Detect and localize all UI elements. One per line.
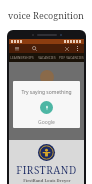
button[interactable]: More options bbox=[73, 44, 82, 53]
button[interactable]: Menu bbox=[12, 44, 22, 53]
button[interactable]: PDF VACANCIES bbox=[59, 53, 84, 62]
staticText: voice Recognition bbox=[8, 9, 84, 21]
staticText: Google bbox=[38, 119, 55, 126]
button[interactable]: Microphone bbox=[40, 101, 53, 114]
button[interactable]: LEARNERSHIPS bbox=[9, 53, 34, 62]
staticText: FirstRand Louis Dreyer bbox=[23, 178, 71, 183]
button[interactable]: Search bbox=[29, 44, 39, 53]
staticText: FIRSTRAND bbox=[16, 163, 77, 177]
staticText: PDF VACANCIES bbox=[59, 56, 84, 60]
button[interactable]: Close bbox=[62, 44, 71, 53]
staticText: VACANCIES bbox=[38, 56, 56, 60]
staticText: LEARNERSHIPS bbox=[10, 56, 34, 60]
button[interactable]: Try saying something bbox=[13, 81, 80, 128]
staticText: Try saying something bbox=[21, 89, 72, 96]
button[interactable]: VACANCIES bbox=[34, 53, 59, 62]
